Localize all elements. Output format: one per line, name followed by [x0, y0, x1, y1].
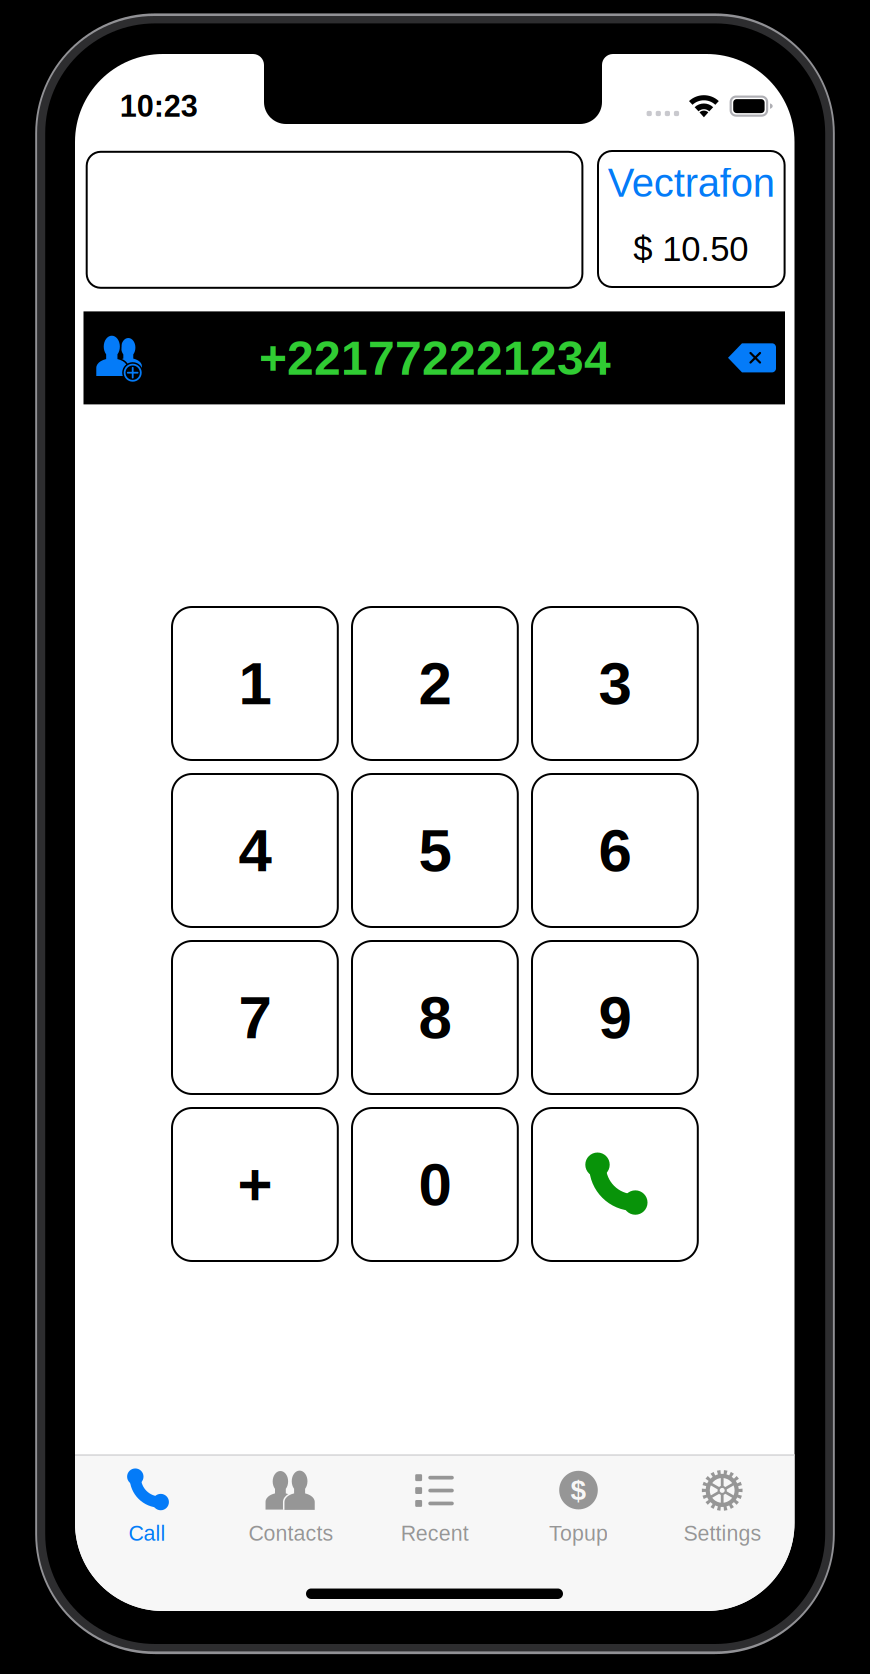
- staticText: 0: [418, 1151, 451, 1218]
- staticText: 9: [598, 984, 631, 1051]
- staticText: $ 10.50: [633, 230, 748, 268]
- button[interactable]: Call: [0, 0, 870, 1674]
- button[interactable]: 3: [531, 606, 699, 761]
- button[interactable]: 0: [351, 1107, 519, 1262]
- button[interactable]: 8: [351, 940, 519, 1095]
- staticText: 2: [418, 650, 451, 717]
- staticText: Settings: [683, 1521, 761, 1545]
- staticText: Call: [128, 1521, 165, 1545]
- button[interactable]: $: [0, 0, 870, 1674]
- button[interactable]: [86, 151, 583, 289]
- button[interactable]: Delete: [0, 0, 870, 1674]
- staticText: 4: [238, 817, 271, 884]
- staticText: Contacts: [248, 1521, 333, 1545]
- staticText: +: [237, 1151, 272, 1218]
- staticText: 6: [598, 817, 631, 884]
- staticText: 7: [238, 984, 271, 1051]
- button[interactable]: 9: [531, 940, 699, 1095]
- button[interactable]: Vectrafon: [597, 150, 786, 288]
- button[interactable]: Add contact: [0, 0, 870, 1674]
- button[interactable]: Call: [531, 1107, 699, 1262]
- button[interactable]: 1: [171, 606, 339, 761]
- button[interactable]: 7: [171, 940, 339, 1095]
- button[interactable]: 5: [351, 773, 519, 928]
- staticText: 5: [418, 817, 451, 884]
- staticText: Recent: [401, 1521, 469, 1545]
- button[interactable]: Contacts: [0, 0, 870, 1674]
- button[interactable]: Settings: [0, 0, 870, 1674]
- staticText: 3: [598, 650, 631, 717]
- button[interactable]: Recent: [0, 0, 870, 1674]
- button[interactable]: 2: [351, 606, 519, 761]
- staticText: 1: [238, 650, 271, 717]
- button[interactable]: 4: [171, 773, 339, 928]
- button[interactable]: 6: [531, 773, 699, 928]
- staticText: $: [570, 1474, 586, 1506]
- button[interactable]: +: [171, 1107, 339, 1262]
- staticText: Topup: [549, 1521, 608, 1545]
- staticText: +221772221234: [259, 331, 611, 385]
- staticText: 10:23: [120, 89, 198, 123]
- staticText: Vectrafon: [608, 161, 775, 205]
- staticText: 8: [418, 984, 451, 1051]
